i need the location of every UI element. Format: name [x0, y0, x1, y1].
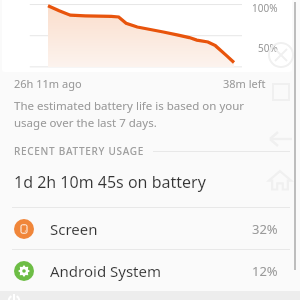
staticText: 100%: [252, 1, 278, 15]
button[interactable]: Home: [266, 166, 294, 194]
staticText: 1d 2h 10m 45s on battery: [14, 171, 206, 193]
staticText: 26h 11m ago: [14, 76, 82, 91]
button[interactable]: Screen: [0, 208, 300, 249]
staticText: Android System: [50, 261, 162, 281]
staticText: 38m left: [223, 76, 266, 91]
button[interactable]: Android System: [0, 250, 300, 291]
staticText: 50%: [258, 41, 278, 55]
staticText: Screen: [50, 219, 98, 239]
staticText: 12%: [252, 262, 278, 280]
button[interactable]: Close: [268, 42, 294, 68]
button[interactable]: Recents: [271, 82, 293, 104]
staticText: 32%: [252, 220, 278, 238]
staticText: The estimated battery life is based on y…: [14, 98, 278, 130]
staticText: RECENT BATTERY USAGE: [14, 144, 145, 158]
button[interactable]: Back: [264, 128, 294, 150]
